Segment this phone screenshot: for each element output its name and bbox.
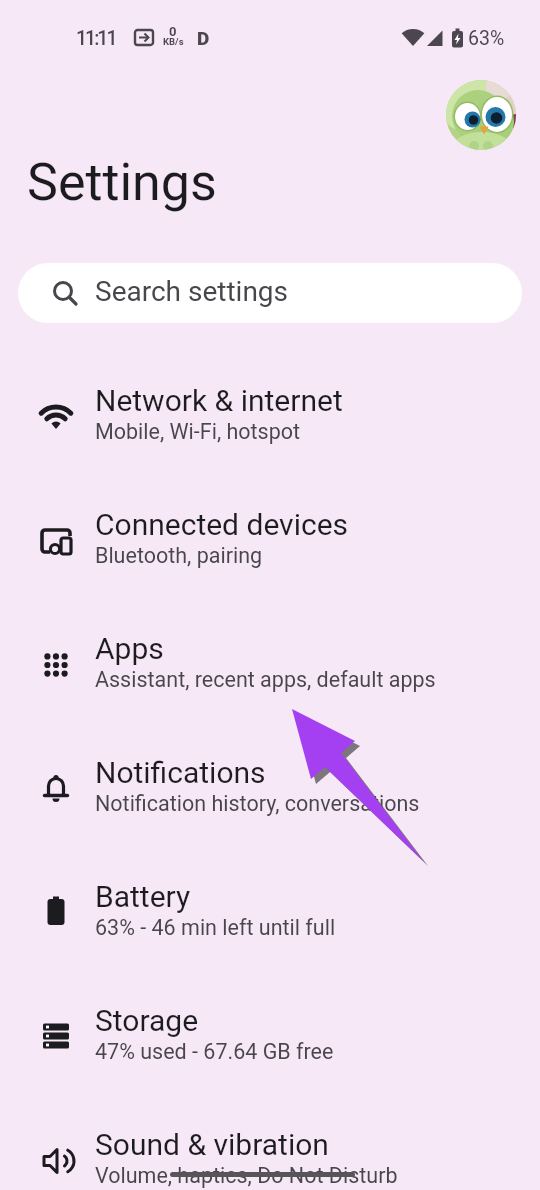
button[interactable]: Sound & vibration <box>0 1099 540 1190</box>
button[interactable]: Search settings <box>18 263 522 323</box>
staticText: KB/s <box>163 36 184 47</box>
staticText: Volume, haptics, Do Not Disturb <box>95 1163 398 1188</box>
staticText: Sound & vibration <box>95 1127 329 1162</box>
staticText: Notifications <box>95 755 266 790</box>
staticText: Mobile, Wi-Fi, hotspot <box>95 419 301 444</box>
staticText: Settings <box>27 152 217 213</box>
staticText: Search settings <box>95 275 289 308</box>
staticText: Assistant, recent apps, default apps <box>95 667 436 692</box>
button[interactable]: Apps <box>0 603 540 727</box>
staticText: Battery <box>95 879 191 914</box>
staticText: 11:11 <box>76 27 116 50</box>
staticText: 47% used - 67.64 GB free <box>95 1039 334 1064</box>
button[interactable]: Notifications <box>0 727 540 851</box>
staticText: 0 <box>169 24 177 39</box>
button[interactable]: Battery <box>0 851 540 975</box>
staticText: Apps <box>95 631 164 666</box>
staticText: Connected devices <box>95 507 349 542</box>
staticText: Network & internet <box>95 383 343 418</box>
button[interactable] <box>446 80 516 150</box>
staticText: D <box>197 27 210 49</box>
staticText: Notification history, conversations <box>95 791 420 816</box>
button[interactable]: Storage <box>0 975 540 1099</box>
staticText: 63% <box>468 27 505 50</box>
button[interactable]: Network & internet <box>0 355 540 479</box>
staticText: 63% - 46 min left until full <box>95 915 336 940</box>
staticText: Storage <box>95 1003 199 1038</box>
button[interactable]: Connected devices <box>0 479 540 603</box>
staticText: Bluetooth, pairing <box>95 543 263 568</box>
